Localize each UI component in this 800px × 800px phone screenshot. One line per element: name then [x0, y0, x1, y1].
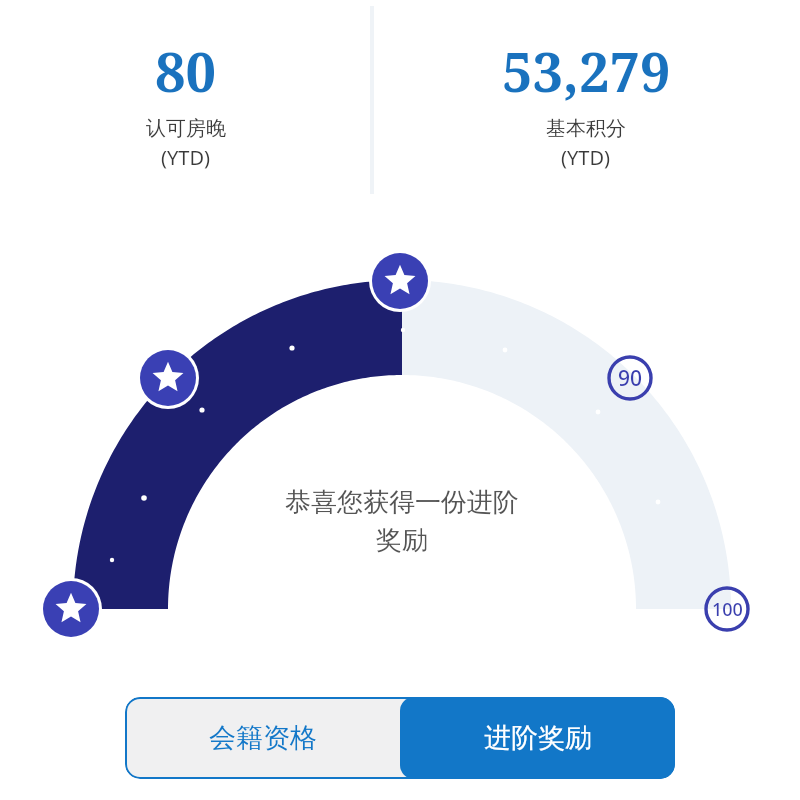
staticText: 90 [618, 364, 643, 393]
staticText: 基本积分 [546, 116, 626, 141]
button[interactable]: 会籍资格 [125, 697, 400, 779]
staticText: (YTD) [161, 144, 211, 171]
staticText: (YTD) [561, 144, 611, 171]
staticText: 认可房晚 [146, 116, 226, 141]
staticText: 会籍资格 [209, 721, 317, 755]
staticText: 奖励 [376, 524, 428, 557]
staticText: 100 [712, 597, 743, 622]
staticText: 80 [155, 34, 217, 108]
button[interactable]: 进阶奖励 [400, 697, 675, 779]
staticText: 53,279 [502, 34, 671, 108]
staticText: 进阶奖励 [484, 721, 592, 755]
staticText: 恭喜您获得一份进阶 [285, 486, 519, 519]
